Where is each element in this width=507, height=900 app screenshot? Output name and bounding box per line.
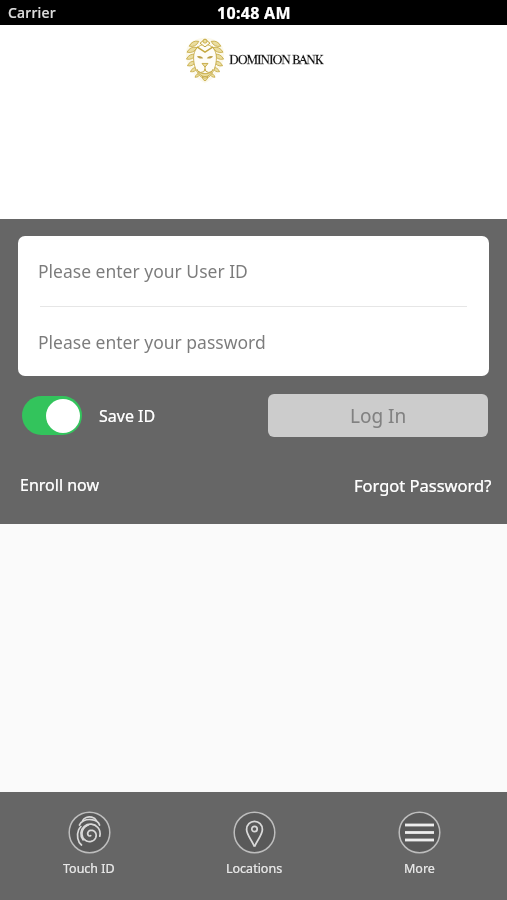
staticText: Touch ID [63,860,115,877]
staticText: More [404,860,435,877]
staticText: Please enter your User ID [38,259,248,283]
button[interactable]: More [379,807,459,881]
button[interactable]: Save ID toggle, on [22,396,82,435]
staticText: Carrier [8,3,56,22]
staticText: Save ID [99,405,156,427]
staticText: Log In [350,403,407,429]
staticText: Enroll now [20,474,99,496]
staticText: 10:48 AM [217,2,291,24]
button[interactable]: Please enter your password [18,307,489,376]
staticText: Locations [226,860,283,877]
button[interactable]: Log In [268,394,488,437]
button[interactable]: Enroll now [0,470,105,500]
button[interactable]: Forgot Password? [348,470,507,500]
button[interactable]: Locations [214,807,294,881]
button[interactable]: Touch ID [49,807,129,881]
staticText: Please enter your password [38,330,266,354]
button[interactable]: Please enter your User ID [18,236,489,306]
staticText: DOMINION BANK [229,49,323,67]
staticText: Forgot Password? [354,474,492,496]
